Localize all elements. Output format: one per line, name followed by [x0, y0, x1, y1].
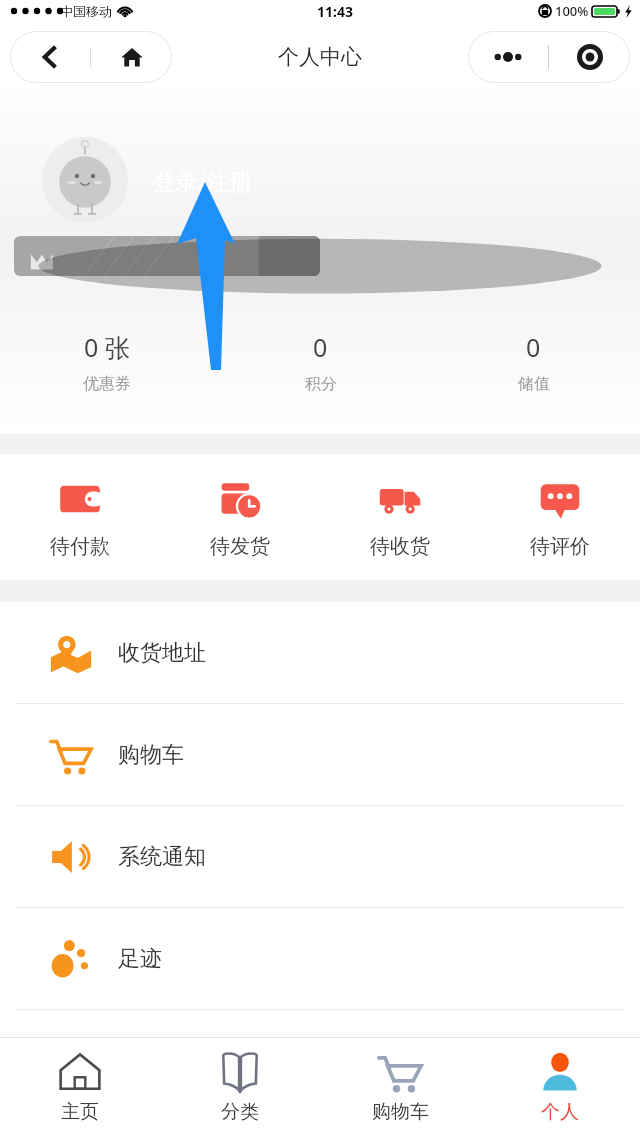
staticText: 个人中心 — [278, 44, 362, 70]
button[interactable]: 分类 — [160, 1038, 320, 1136]
staticText: 优惠券 — [83, 374, 131, 394]
staticText: 待发货 — [210, 534, 270, 559]
staticText: 待收货 — [370, 534, 430, 559]
button[interactable]: 足迹 — [0, 908, 640, 1009]
button[interactable]: 收货地址 — [0, 602, 640, 703]
staticText: 待评价 — [530, 534, 590, 559]
staticText: 分类 — [221, 1100, 259, 1124]
staticText: 100% — [555, 2, 589, 20]
button[interactable]: 主页 — [0, 1038, 160, 1136]
button[interactable]: Close — [549, 31, 630, 83]
staticText: 收货地址 — [118, 639, 206, 667]
button[interactable]: 个人 — [480, 1038, 640, 1136]
staticText: 登录/注册 — [152, 165, 253, 196]
button[interactable]: 系统通知 — [0, 806, 640, 907]
staticText: 系统通知 — [118, 843, 206, 871]
staticText: 中国移动 — [60, 3, 112, 19]
staticText: 足迹 — [118, 945, 162, 973]
button[interactable]: More options — [468, 31, 548, 83]
button[interactable]: 购物车 — [0, 704, 640, 805]
button[interactable]: 登录/注册 — [42, 134, 253, 226]
button[interactable]: 0 — [427, 330, 640, 394]
button[interactable]: 0 张 — [0, 330, 214, 394]
staticText: 待付款 — [50, 534, 110, 559]
staticText: 购物车 — [118, 741, 184, 769]
staticText: 0 — [526, 330, 541, 364]
staticText: 积分 — [305, 374, 337, 394]
staticText: 储值 — [518, 374, 550, 394]
button[interactable]: 待评价 — [480, 454, 640, 580]
staticText: 0 张 — [84, 330, 130, 364]
staticText: 主页 — [61, 1100, 99, 1124]
button[interactable]: Back — [10, 31, 90, 83]
button[interactable]: 0 — [214, 330, 427, 394]
button[interactable]: 购物车 — [320, 1038, 480, 1136]
staticText: 0 — [313, 330, 328, 364]
button[interactable] — [14, 236, 320, 276]
button[interactable]: 待付款 — [0, 454, 160, 580]
staticText: 购物车 — [372, 1100, 429, 1124]
button[interactable]: 待收货 — [320, 454, 480, 580]
button[interactable]: Home — [91, 31, 172, 83]
staticText: 11:43 — [317, 2, 353, 21]
staticText: 个人 — [541, 1100, 579, 1124]
button[interactable]: 待发货 — [160, 454, 320, 580]
